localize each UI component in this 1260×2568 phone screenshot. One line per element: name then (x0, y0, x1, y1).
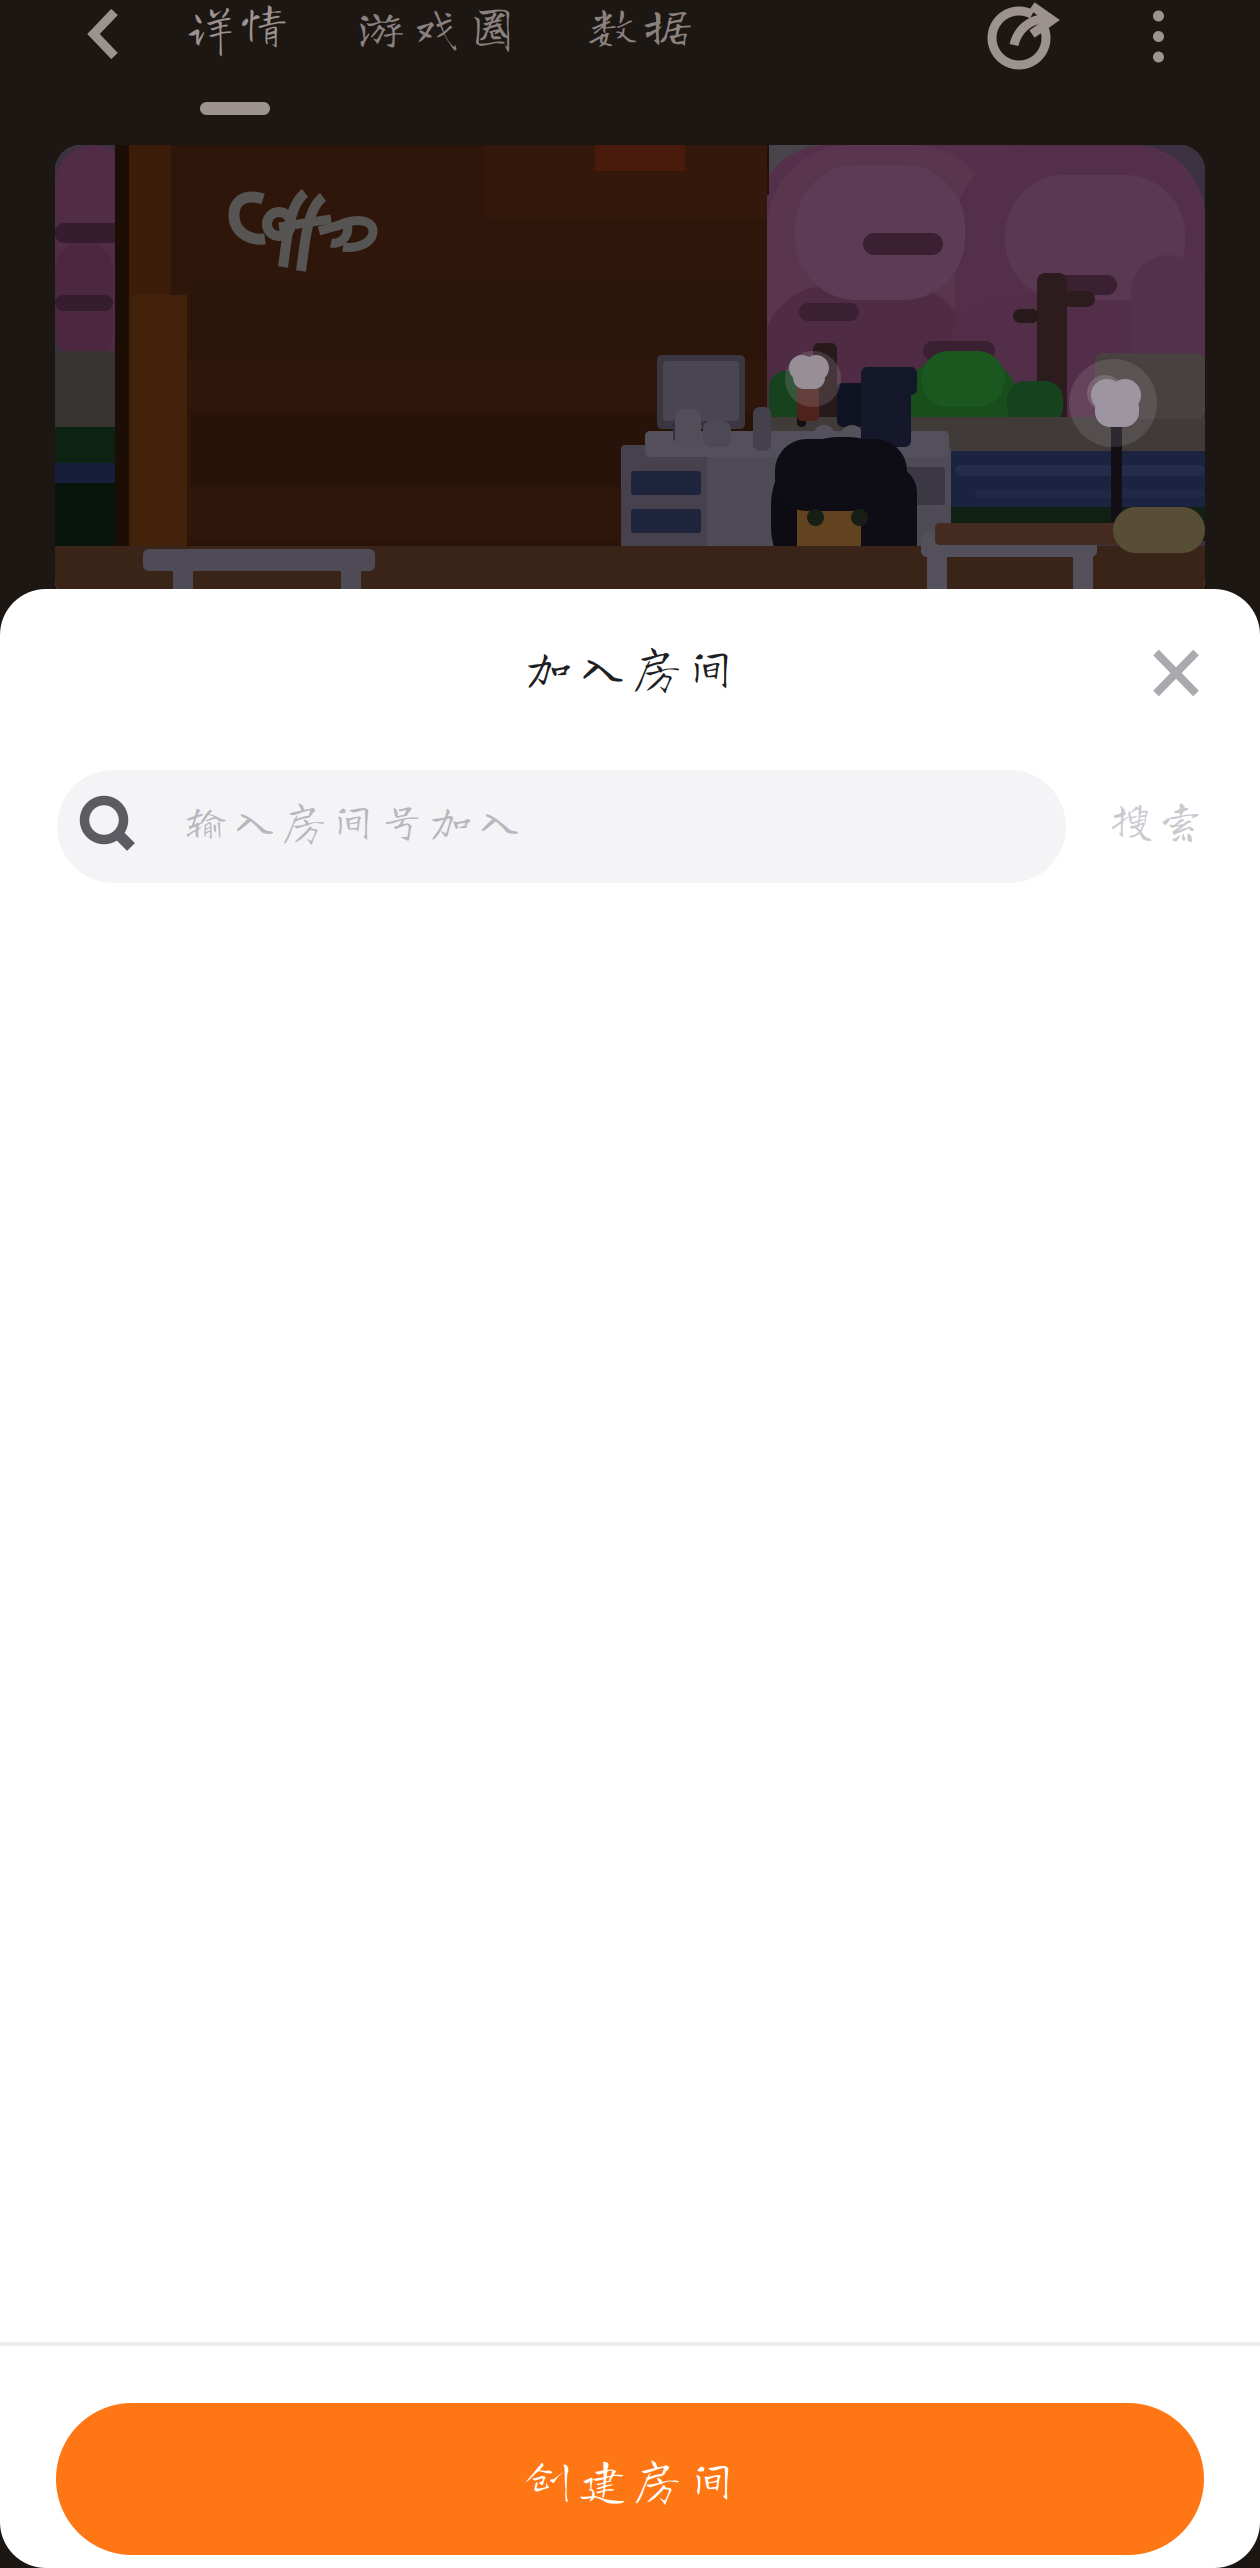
button[interactable]: More options (1153, 11, 1164, 62)
button[interactable]: Close (1114, 611, 1238, 735)
staticText: 详情 (186, 0, 288, 47)
button[interactable]: 搜索 (1066, 763, 1246, 876)
staticText: 创建房间 (524, 2456, 736, 2502)
staticText: 搜索 (1109, 797, 1202, 841)
staticText: 加入房间 (525, 643, 735, 691)
button[interactable]: 详情 (153, 0, 317, 121)
button[interactable]: 创建房间 (56, 2403, 1204, 2555)
staticText: 数据 (588, 0, 692, 49)
staticText: 游戏圈 (357, 2, 516, 51)
button[interactable]: 游戏圈 (338, 2, 528, 98)
button[interactable]: Back (58, 0, 150, 88)
staticText: 输入房间号加入 (184, 798, 522, 842)
button[interactable]: 数据 (558, 0, 718, 96)
button[interactable]: Share (987, 3, 1057, 67)
